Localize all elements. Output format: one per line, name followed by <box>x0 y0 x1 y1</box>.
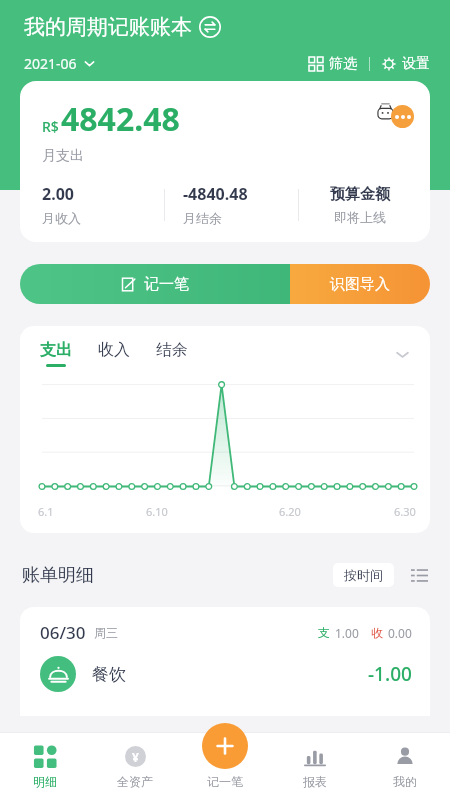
staticText: 1.00 <box>335 625 359 641</box>
staticText: 4842.48 <box>61 97 180 141</box>
button[interactable]: 展开 <box>392 344 412 364</box>
button[interactable]: 支出 <box>40 340 72 367</box>
button[interactable]: ¥ <box>90 732 180 800</box>
button[interactable]: 2021-06 <box>24 54 96 73</box>
staticText: -4840.48 <box>183 183 248 205</box>
staticText: 按时间 <box>344 567 383 583</box>
staticText: 筛选 <box>329 55 357 73</box>
button[interactable]: 识图导入 <box>290 264 430 304</box>
staticText: 收 <box>371 625 383 640</box>
staticText: 识图导入 <box>330 275 390 294</box>
button[interactable]: 明细 <box>0 732 90 800</box>
staticText: 餐饮 <box>92 664 126 685</box>
button[interactable]: 餐饮 <box>20 656 430 692</box>
staticText: 6.1 <box>38 504 54 519</box>
staticText: 0.00 <box>388 625 412 641</box>
staticText: 全资产 <box>117 774 153 789</box>
button[interactable]: 记一笔 <box>20 264 290 304</box>
staticText: -1.00 <box>368 661 412 687</box>
staticText: 即将上线 <box>334 209 386 225</box>
button[interactable]: 设置 <box>382 55 430 73</box>
button[interactable]: 列表视图 <box>408 564 430 586</box>
button[interactable]: 记一笔 <box>202 723 248 769</box>
staticText: 记一笔 <box>207 774 243 789</box>
staticText: 我的周期记账账本 <box>24 14 192 40</box>
button[interactable]: 结余 <box>156 340 188 367</box>
staticText: 明细 <box>33 774 57 789</box>
button[interactable]: 账本头像 <box>370 97 401 128</box>
staticText: 收入 <box>98 340 130 360</box>
staticText: 月支出 <box>42 147 84 165</box>
staticText: 支 <box>318 625 330 640</box>
staticText: R$ <box>42 117 59 136</box>
staticText: 周三 <box>94 625 118 640</box>
button[interactable]: 更多 <box>391 105 414 128</box>
staticText: 设置 <box>402 55 430 73</box>
staticText: 我的 <box>393 774 417 789</box>
staticText: 月结余 <box>183 210 222 226</box>
staticText: 2021-06 <box>24 54 77 73</box>
staticText: 06/30 <box>40 621 86 644</box>
button[interactable]: 按时间 <box>333 563 394 587</box>
staticText: 6.10 <box>146 504 168 519</box>
staticText: 预算金额 <box>330 185 390 204</box>
staticText: 6.30 <box>394 504 416 519</box>
staticText: 支出 <box>40 340 72 360</box>
button[interactable]: 我的 <box>360 732 450 800</box>
staticText: 6.20 <box>279 504 301 519</box>
button[interactable]: 切换账本 <box>199 16 221 38</box>
staticText: ¥ <box>132 749 139 765</box>
button[interactable]: 收入 <box>98 340 130 367</box>
staticText: 月收入 <box>42 210 81 226</box>
staticText: 报表 <box>303 774 327 789</box>
staticText: 结余 <box>156 340 188 360</box>
staticText: 2.00 <box>42 183 74 205</box>
button[interactable]: 筛选 <box>309 55 357 73</box>
button[interactable]: R$ <box>20 81 430 242</box>
staticText: 账单明细 <box>22 564 94 587</box>
button[interactable]: 报表 <box>270 732 360 800</box>
staticText: 记一笔 <box>144 275 189 294</box>
